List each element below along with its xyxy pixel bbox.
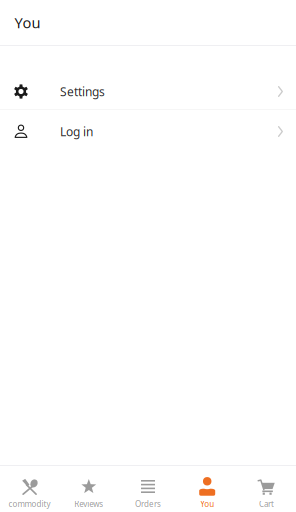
button[interactable]: Cart — [237, 465, 296, 512]
staticText: You — [200, 498, 214, 509]
staticText: Orders — [135, 498, 161, 509]
staticText: Reviews — [74, 498, 103, 509]
button[interactable]: commodity — [0, 465, 59, 512]
button[interactable]: Orders — [118, 465, 178, 512]
staticText: Cart — [259, 498, 274, 509]
button[interactable]: You — [178, 465, 237, 512]
staticText: Log in — [60, 123, 93, 139]
staticText: commodity — [9, 498, 51, 509]
button[interactable]: Reviews — [59, 465, 118, 512]
staticText: You — [14, 13, 40, 32]
button[interactable]: Log in — [0, 110, 296, 150]
button[interactable]: Settings — [0, 70, 296, 110]
staticText: Settings — [60, 83, 105, 99]
